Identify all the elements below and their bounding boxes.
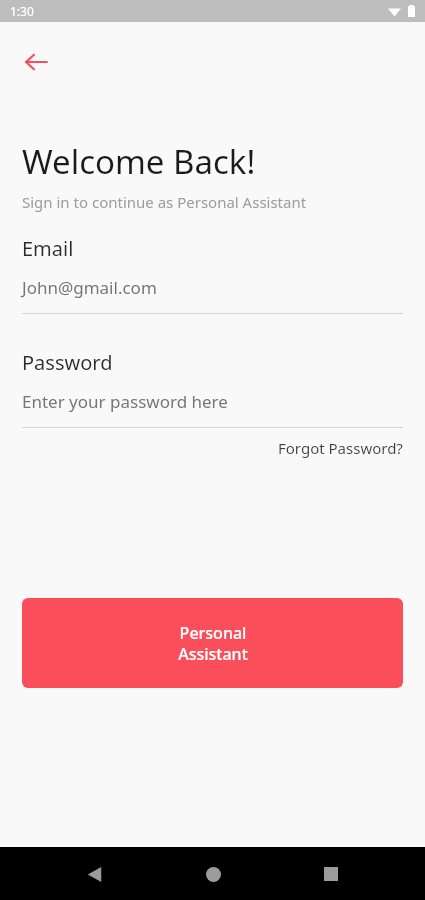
button[interactable]: Enter your password here bbox=[22, 390, 403, 413]
button[interactable]: John@gmail.com bbox=[22, 276, 403, 299]
button[interactable]: Forgot Password? bbox=[278, 436, 403, 460]
staticText: Forgot Password? bbox=[278, 438, 403, 458]
staticText: 1:30 bbox=[10, 3, 34, 19]
staticText: Personal Assistant bbox=[178, 622, 248, 665]
staticText: Sign in to continue as Personal Assistan… bbox=[22, 192, 307, 212]
button[interactable]: Back bbox=[14, 40, 58, 84]
staticText: Password bbox=[22, 349, 113, 376]
staticText: Welcome Back! bbox=[22, 139, 256, 184]
button[interactable]: Recent apps bbox=[307, 850, 355, 898]
button[interactable]: Home bbox=[189, 850, 237, 898]
staticText: John@gmail.com bbox=[22, 276, 157, 299]
button[interactable]: Personal Assistant bbox=[22, 598, 403, 688]
staticText: Email bbox=[22, 235, 74, 262]
button[interactable]: Back bbox=[70, 850, 118, 898]
staticText: Enter your password here bbox=[22, 390, 228, 413]
